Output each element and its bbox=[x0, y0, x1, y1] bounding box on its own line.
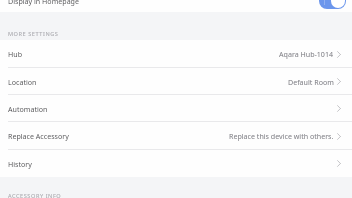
button[interactable]: History bbox=[0, 150, 352, 177]
staticText: Replace this device with others. bbox=[229, 131, 334, 141]
staticText: Automation bbox=[8, 104, 48, 114]
button[interactable]: Display in Homepage bbox=[319, 0, 346, 9]
staticText: Display in Homepage bbox=[8, 0, 79, 6]
button[interactable]: Location bbox=[0, 68, 352, 95]
staticText: Aqara Hub-1014 bbox=[279, 49, 334, 59]
staticText: MORE SETTINGS bbox=[8, 30, 59, 38]
staticText: Default Room bbox=[288, 77, 334, 87]
staticText: Hub bbox=[8, 49, 23, 59]
staticText: ACCESSORY INFO bbox=[8, 192, 62, 198]
staticText: Location bbox=[8, 77, 37, 87]
staticText: History bbox=[8, 159, 32, 169]
button[interactable]: Replace Accessory bbox=[0, 122, 352, 150]
staticText: Replace Accessory bbox=[8, 131, 69, 141]
button[interactable]: Automation bbox=[0, 95, 352, 122]
button[interactable]: Hub bbox=[0, 40, 352, 68]
button[interactable]: Display in Homepage bbox=[0, 0, 352, 12]
